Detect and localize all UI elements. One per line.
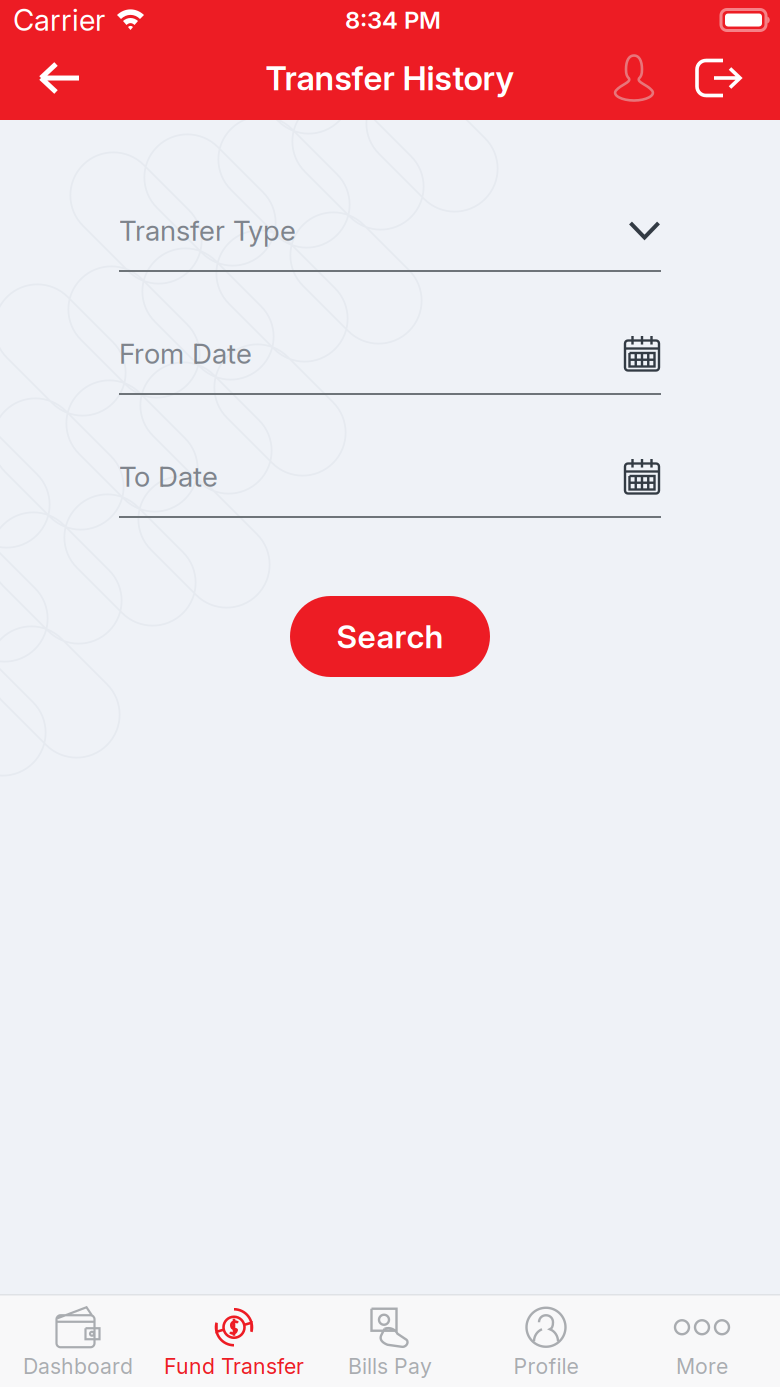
- button[interactable]: Log out: [685, 47, 752, 109]
- staticText: Dashboard: [23, 1353, 133, 1379]
- button[interactable]: To Date: [119, 456, 661, 518]
- staticText: Fund Transfer: [164, 1353, 304, 1379]
- button[interactable]: Bills Pay: [312, 1295, 468, 1387]
- staticText: Transfer Type: [119, 214, 296, 247]
- button[interactable]: Back: [23, 47, 97, 109]
- staticText: Profile: [513, 1353, 578, 1379]
- button[interactable]: Profile: [604, 47, 664, 109]
- button[interactable]: Profile: [468, 1295, 624, 1387]
- staticText: Transfer History: [265, 58, 514, 98]
- button[interactable]: More: [624, 1295, 780, 1387]
- staticText: From Date: [119, 337, 252, 370]
- button[interactable]: Dashboard: [0, 1295, 156, 1387]
- button[interactable]: Search: [290, 596, 490, 677]
- button[interactable]: Transfer Type: [119, 210, 661, 272]
- staticText: 8:34 PM: [345, 5, 441, 34]
- button[interactable]: From Date: [119, 333, 661, 395]
- staticText: Carrier: [13, 2, 105, 38]
- staticText: To Date: [119, 460, 218, 493]
- staticText: More: [676, 1353, 728, 1379]
- staticText: Bills Pay: [348, 1353, 432, 1379]
- button[interactable]: Fund Transfer: [156, 1295, 312, 1387]
- staticText: Search: [336, 617, 443, 656]
